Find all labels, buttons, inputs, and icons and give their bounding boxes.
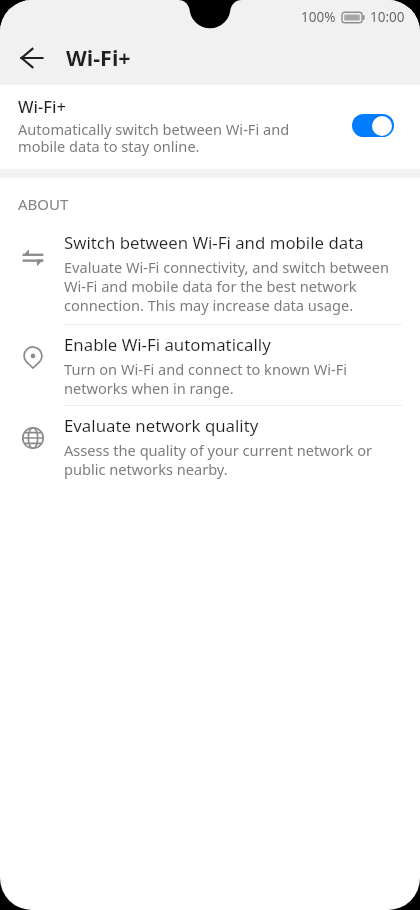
button[interactable]: Enable Wi-Fi automatically	[0, 325, 420, 405]
button[interactable]: Back	[8, 34, 56, 82]
staticText: Turn on Wi-Fi and connect to known Wi-Fi…	[64, 359, 402, 398]
button[interactable]: Wi-Fi+ toggle	[352, 114, 394, 137]
staticText: 10:00	[370, 8, 405, 26]
button[interactable]: Evaluate network quality	[0, 406, 420, 488]
button[interactable]: Wi-Fi+	[0, 85, 420, 169]
staticText: 100%	[301, 8, 336, 26]
staticText: Wi-Fi+	[18, 95, 66, 117]
staticText: Wi-Fi+	[66, 43, 131, 72]
staticText: Automatically switch between Wi-Fi and m…	[18, 119, 330, 156]
staticText: Evaluate network quality	[64, 414, 259, 437]
button[interactable]: Switch between Wi-Fi and mobile data	[0, 223, 420, 324]
staticText: Assess the quality of your current netwo…	[64, 440, 402, 479]
staticText: Enable Wi-Fi automatically	[64, 333, 271, 356]
staticText: Evaluate Wi-Fi connectivity, and switch …	[64, 257, 402, 315]
staticText: Switch between Wi-Fi and mobile data	[64, 231, 364, 254]
staticText: ABOUT	[18, 194, 69, 214]
